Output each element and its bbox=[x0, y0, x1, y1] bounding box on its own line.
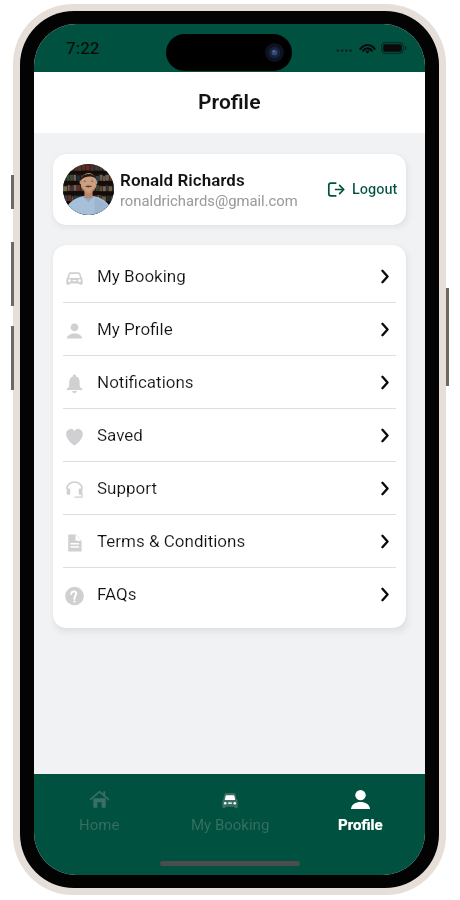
button[interactable]: Home bbox=[34, 787, 165, 837]
staticText: Profile bbox=[198, 90, 261, 115]
staticText: ronaldrichards@gmail.com bbox=[120, 192, 298, 209]
staticText: 7:22 bbox=[66, 38, 100, 58]
button[interactable]: Saved bbox=[53, 409, 406, 461]
staticText: Saved bbox=[97, 425, 381, 445]
button[interactable]: Support bbox=[53, 462, 406, 514]
staticText: My Booking bbox=[191, 816, 270, 834]
button[interactable]: My Profile bbox=[53, 303, 406, 355]
staticText: My Booking bbox=[97, 266, 381, 286]
staticText: Home bbox=[79, 816, 120, 834]
button[interactable]: My Booking bbox=[53, 250, 406, 302]
button[interactable]: FAQs bbox=[53, 568, 406, 620]
button[interactable]: Terms & Conditions bbox=[53, 515, 406, 567]
button[interactable]: Logout bbox=[323, 171, 402, 208]
button[interactable]: Notifications bbox=[53, 356, 406, 408]
staticText: My Profile bbox=[97, 319, 381, 339]
staticText: FAQs bbox=[97, 584, 381, 604]
staticText: Logout bbox=[352, 181, 398, 198]
button[interactable]: Profile bbox=[295, 787, 425, 837]
staticText: Ronald Richards bbox=[120, 170, 245, 190]
staticText: Terms & Conditions bbox=[97, 531, 381, 551]
staticText: Profile bbox=[338, 816, 383, 834]
button[interactable]: My Booking bbox=[165, 787, 295, 837]
staticText: Notifications bbox=[97, 372, 381, 392]
staticText: Support bbox=[97, 478, 381, 498]
